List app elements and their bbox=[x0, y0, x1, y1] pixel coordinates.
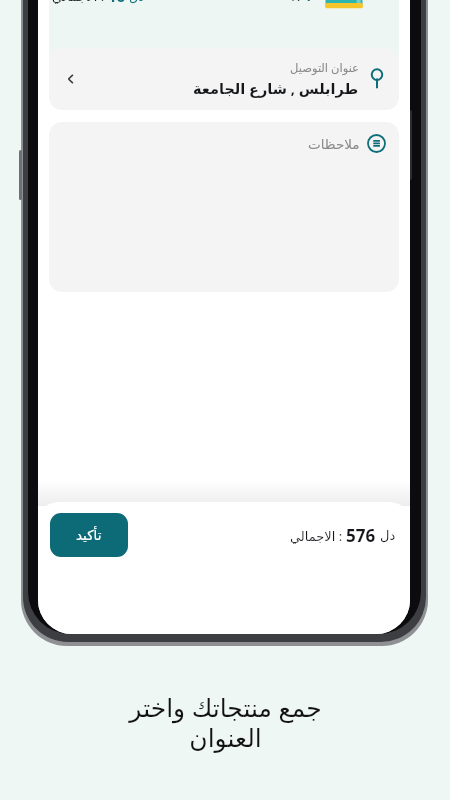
staticText: 576 bbox=[346, 524, 376, 547]
staticText: تأكيد bbox=[76, 527, 102, 543]
staticText: 1 bbox=[304, 0, 313, 5]
staticText: طرابلس , شارع الجامعة bbox=[193, 78, 359, 98]
staticText: ملاحظات bbox=[308, 136, 360, 152]
staticText: جمع منتجاتك واختر bbox=[129, 690, 322, 724]
other: Change address bbox=[63, 71, 79, 87]
staticText: الاجمالي : bbox=[290, 527, 346, 545]
staticText: عنوان التوصيل bbox=[290, 60, 359, 76]
staticText: دل bbox=[380, 528, 396, 543]
button[interactable]: تأكيد bbox=[50, 513, 128, 557]
button[interactable] bbox=[49, 0, 399, 88]
staticText: دل bbox=[129, 0, 145, 4]
staticText: 16 bbox=[108, 0, 126, 6]
staticText: العنوان bbox=[189, 724, 262, 753]
button[interactable]: ملاحظات bbox=[49, 122, 399, 292]
staticText: X bbox=[292, 0, 300, 5]
button[interactable]: Change address bbox=[49, 48, 399, 110]
staticText: الاجمالي : bbox=[52, 0, 108, 5]
